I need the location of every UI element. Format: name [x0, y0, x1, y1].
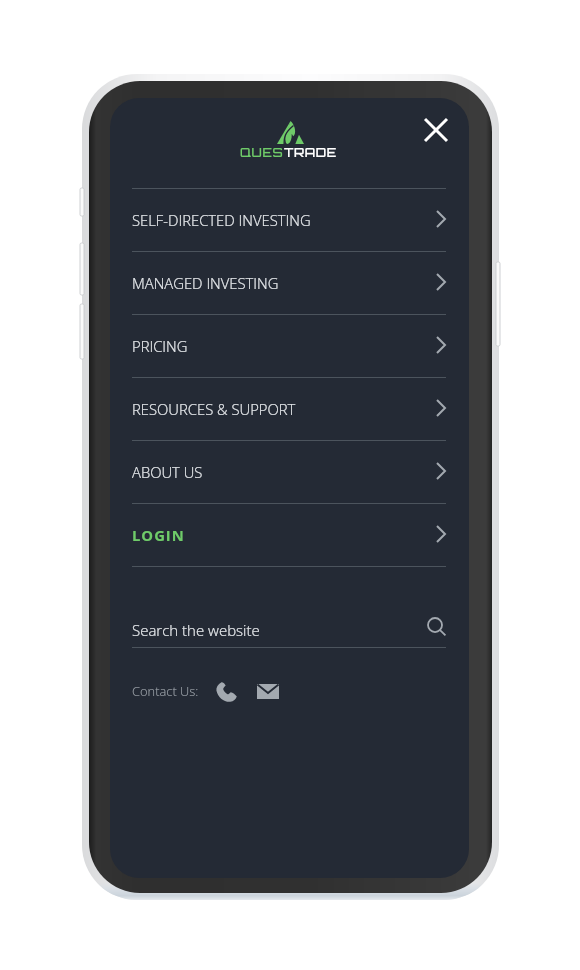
- staticText: Contact Us:: [132, 682, 199, 700]
- staticText: ABOUT US: [132, 462, 203, 482]
- button[interactable]: Close menu: [412, 106, 460, 154]
- button[interactable]: RESOURCES & SUPPORT: [132, 378, 446, 441]
- staticText: MANAGED INVESTING: [132, 273, 279, 293]
- button[interactable]: Call us: [214, 679, 238, 703]
- button[interactable]: Search the website: [132, 611, 446, 648]
- button[interactable]: PRICING: [132, 315, 446, 378]
- staticText: PRICING: [132, 336, 188, 356]
- staticText: Search the website: [132, 620, 260, 640]
- button[interactable]: SELF-DIRECTED INVESTING: [132, 189, 446, 252]
- button[interactable]: ABOUT US: [132, 441, 446, 504]
- staticText: TRADE: [284, 144, 337, 160]
- staticText: RESOURCES & SUPPORT: [132, 399, 296, 419]
- staticText: LOGIN: [132, 525, 185, 545]
- button[interactable]: LOGIN: [132, 504, 446, 567]
- button[interactable]: Email us: [256, 679, 280, 703]
- button[interactable]: MANAGED INVESTING: [132, 252, 446, 315]
- staticText: SELF-DIRECTED INVESTING: [132, 210, 311, 230]
- staticText: QUES: [240, 144, 284, 160]
